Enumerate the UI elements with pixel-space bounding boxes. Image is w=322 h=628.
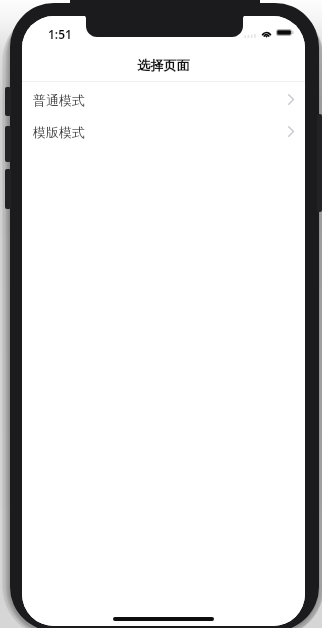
staticText: 普通模式: [33, 92, 85, 108]
staticText: 1:51: [48, 26, 72, 42]
staticText: 模版模式: [33, 124, 85, 140]
staticText: 选择页面: [137, 57, 190, 74]
button[interactable]: 普通模式: [22, 84, 305, 115]
button[interactable]: 模版模式: [22, 116, 305, 147]
